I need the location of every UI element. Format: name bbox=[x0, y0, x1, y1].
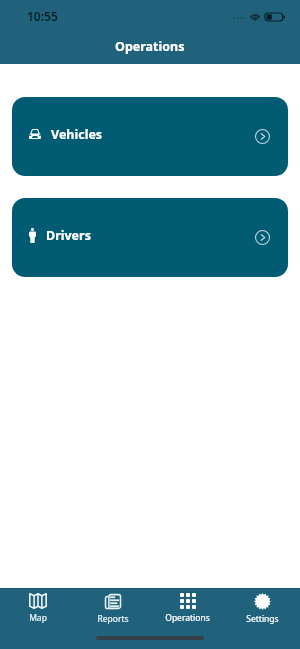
button[interactable]: Reports bbox=[75, 589, 150, 625]
button[interactable]: Operations bbox=[150, 589, 225, 624]
staticText: Drivers bbox=[46, 227, 91, 244]
staticText: 10:55 bbox=[27, 8, 58, 24]
other: Open Drivers bbox=[255, 230, 270, 245]
staticText: Operations bbox=[115, 38, 185, 55]
staticText: Reports bbox=[97, 613, 129, 625]
button[interactable]: Drivers bbox=[12, 198, 288, 277]
staticText: Map bbox=[29, 612, 47, 624]
staticText: Operations bbox=[165, 612, 210, 624]
other: Open Vehicles bbox=[255, 129, 270, 144]
button[interactable]: Map bbox=[0, 589, 75, 624]
button[interactable]: Vehicles bbox=[12, 97, 288, 176]
button[interactable]: Settings bbox=[225, 589, 300, 625]
staticText: Vehicles bbox=[51, 126, 103, 143]
staticText: Settings bbox=[246, 613, 279, 625]
